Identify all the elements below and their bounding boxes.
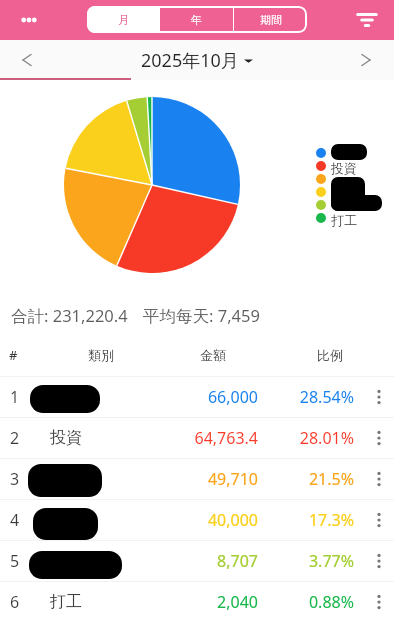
staticText: 2025年10月: [141, 48, 239, 73]
button[interactable]: Row options: [366, 548, 392, 574]
staticText: 類別: [88, 347, 114, 363]
staticText: 投資: [50, 428, 82, 448]
staticText: 40,000: [0, 509, 258, 531]
button[interactable]: Row options: [366, 425, 392, 451]
staticText: 合計: 231,220.4: [11, 304, 128, 327]
staticText: 28.01%: [0, 427, 354, 449]
staticText: 年: [191, 13, 202, 27]
staticText: 3.77%: [0, 550, 354, 572]
staticText: 17.3%: [0, 509, 354, 531]
button[interactable]: 6: [0, 581, 394, 622]
button[interactable]: Row options: [366, 384, 392, 410]
button[interactable]: 月: [87, 6, 159, 33]
staticText: 打工: [331, 212, 357, 228]
staticText: 4: [10, 509, 20, 531]
staticText: 49,710: [0, 468, 258, 490]
staticText: 2: [10, 427, 20, 449]
button[interactable]: 3: [0, 458, 394, 499]
button[interactable]: More options: [13, 4, 45, 36]
staticText: 1: [10, 386, 20, 408]
staticText: 0.88%: [0, 591, 354, 613]
button[interactable]: Row options: [366, 507, 392, 533]
button[interactable]: 2025年10月: [141, 48, 253, 73]
button[interactable]: Previous month: [11, 44, 43, 76]
staticText: 3: [10, 468, 20, 490]
staticText: 比例: [317, 347, 343, 363]
button[interactable]: Row options: [366, 466, 392, 492]
staticText: 期間: [260, 13, 282, 27]
staticText: 66,000: [0, 386, 258, 408]
button[interactable]: 1: [0, 376, 394, 417]
staticText: 21.5%: [0, 468, 354, 490]
button[interactable]: Next month: [350, 44, 382, 76]
button[interactable]: 期間: [234, 6, 307, 33]
button[interactable]: 2: [0, 417, 394, 458]
button[interactable]: 年: [160, 6, 233, 33]
staticText: #: [9, 346, 18, 364]
staticText: 月: [118, 13, 129, 27]
staticText: 64,763.4: [0, 427, 258, 449]
staticText: 金額: [200, 347, 226, 363]
staticText: 6: [10, 591, 20, 613]
staticText: 8,707: [0, 550, 258, 572]
staticText: 投資: [331, 160, 357, 176]
staticText: 2,040: [0, 591, 258, 613]
staticText: 平均每天: 7,459: [143, 304, 260, 327]
button[interactable]: Filter: [352, 5, 382, 35]
button[interactable]: 4: [0, 499, 394, 540]
staticText: 打工: [50, 592, 82, 612]
staticText: 28.54%: [0, 386, 354, 408]
button[interactable]: Row options: [366, 589, 392, 615]
staticText: 5: [10, 550, 20, 572]
button[interactable]: 5: [0, 540, 394, 581]
